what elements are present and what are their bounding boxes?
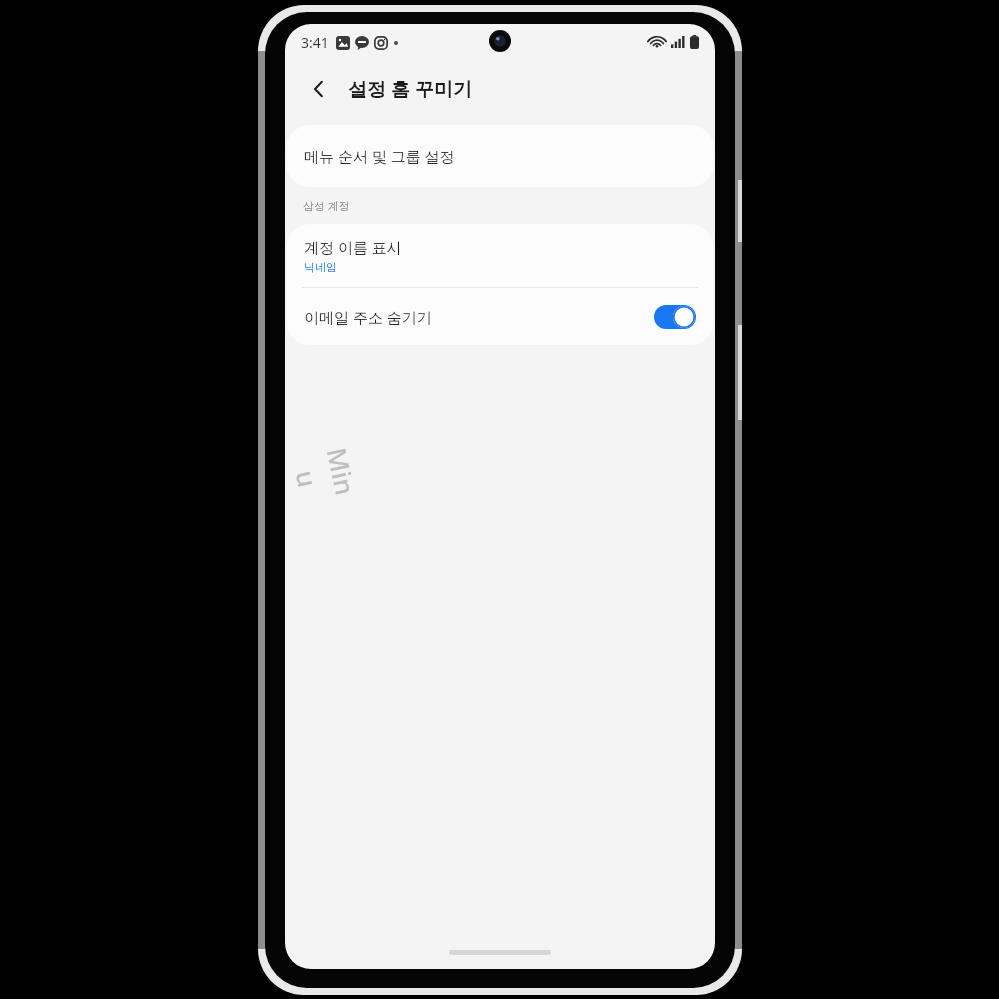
staticText: 설정 홈 꾸미기 (348, 76, 472, 102)
staticText: 계정 이름 표시 (304, 237, 402, 257)
button[interactable]: Hide email address toggle (654, 305, 696, 329)
button[interactable]: 계정 이름 표시 (286, 224, 714, 287)
staticText: 삼성 계정 (303, 198, 350, 213)
staticText: 이메일 주소 숨기기 (304, 307, 654, 327)
staticText: Minu home (285, 438, 365, 520)
staticText: 3:41 (301, 33, 329, 52)
button[interactable]: 이메일 주소 숨기기 (286, 288, 714, 345)
staticText: 메뉴 순서 및 그룹 설정 (304, 146, 455, 166)
button[interactable]: Back (299, 69, 339, 109)
button[interactable]: 메뉴 순서 및 그룹 설정 (286, 125, 714, 187)
staticText: 닉네임 (304, 260, 337, 274)
